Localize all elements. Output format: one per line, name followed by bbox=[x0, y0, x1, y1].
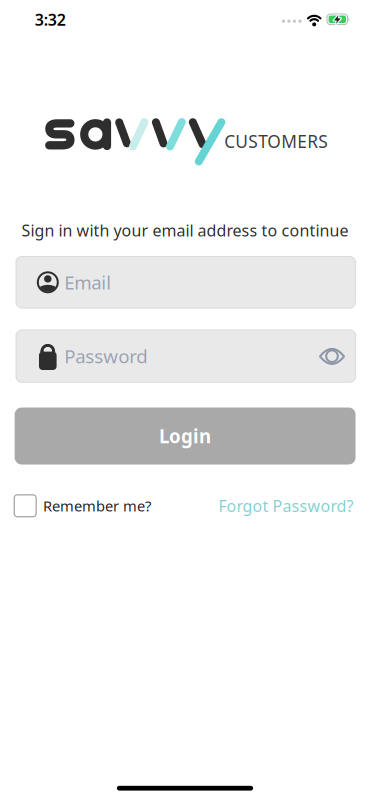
staticText: Login bbox=[159, 424, 211, 448]
staticText: 3:32 bbox=[35, 9, 66, 30]
staticText: Forgot Password? bbox=[218, 495, 353, 516]
staticText: Remember me? bbox=[43, 496, 151, 516]
button[interactable]: Login bbox=[15, 407, 356, 464]
button[interactable]: Remember me bbox=[14, 495, 151, 517]
staticText: Password bbox=[64, 344, 147, 368]
button[interactable]: Forgot Password? bbox=[218, 495, 353, 516]
button[interactable]: Email bbox=[16, 256, 356, 308]
staticText: Email bbox=[64, 270, 111, 295]
staticText: CUSTOMERS bbox=[224, 130, 328, 153]
button[interactable]: Password bbox=[16, 330, 356, 382]
button[interactable]: Show password bbox=[315, 342, 349, 372]
staticText: Sign in with your email address to conti… bbox=[21, 220, 348, 241]
